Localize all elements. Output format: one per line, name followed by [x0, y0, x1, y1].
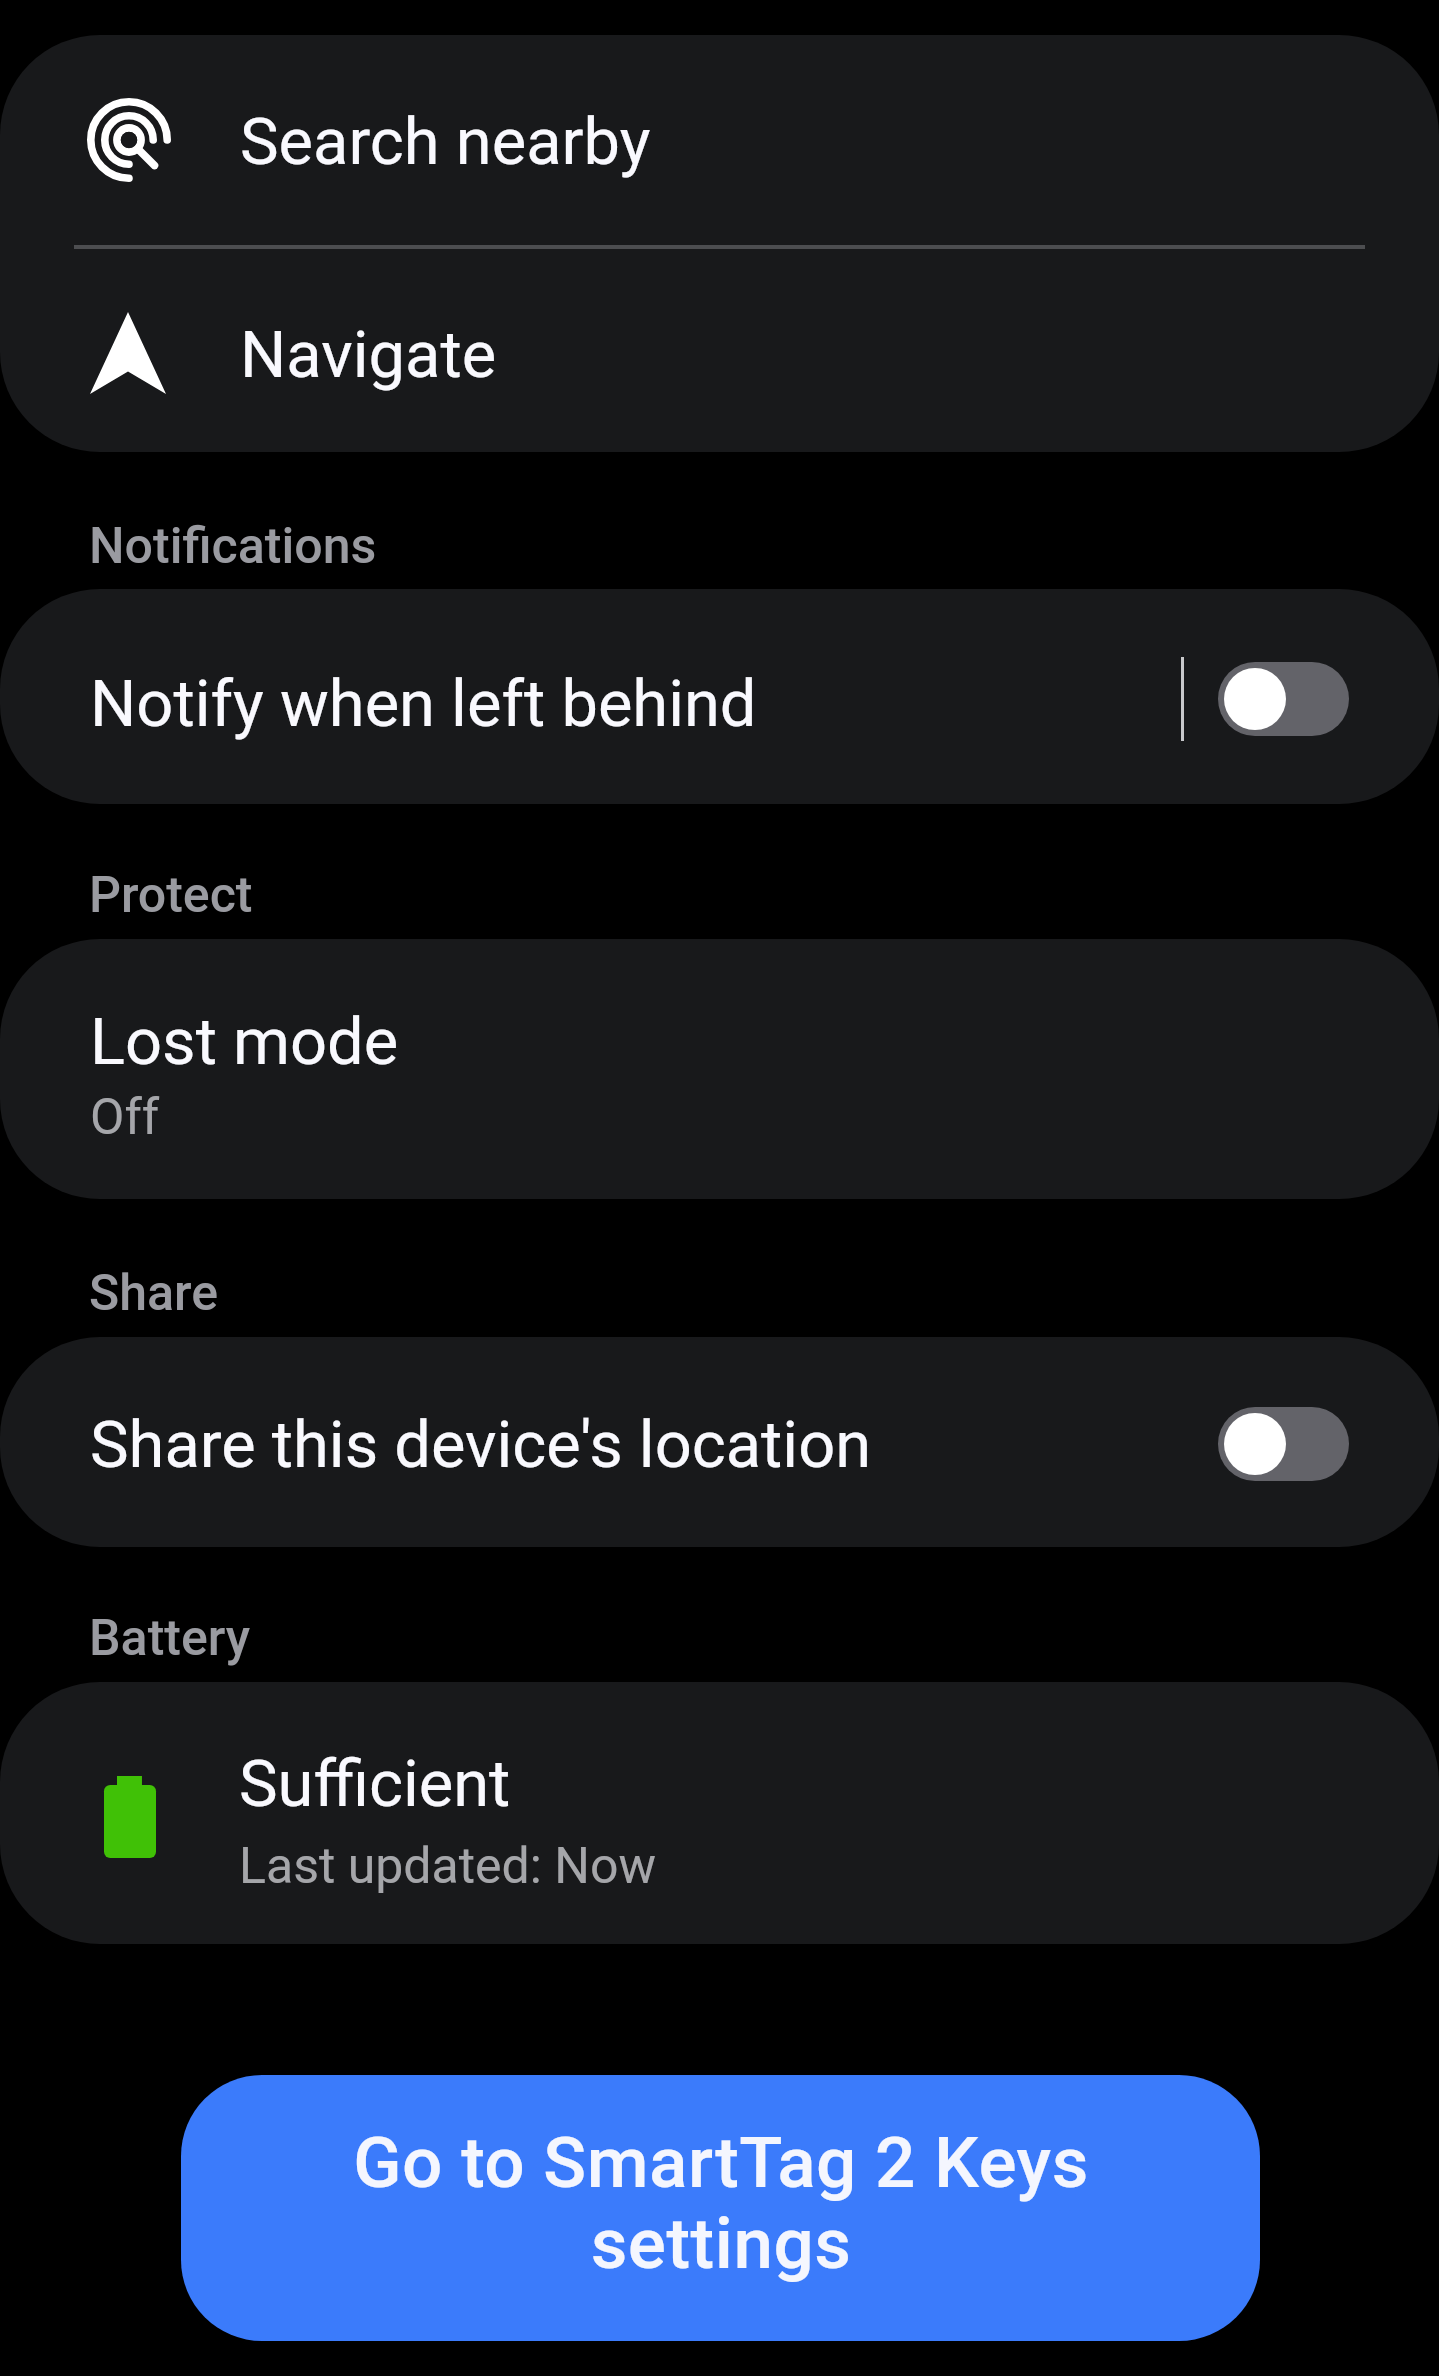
staticText: Search nearby: [240, 104, 651, 180]
button[interactable]: Battery level: [0, 1682, 1439, 1944]
staticText: Battery: [89, 1609, 251, 1668]
other: Battery level: [104, 1776, 156, 1858]
staticText: Protect: [89, 866, 253, 925]
staticText: Off: [90, 1088, 160, 1147]
button[interactable]: Share this device's location: [1218, 1407, 1349, 1481]
staticText: Go to SmartTag 2 Keys settings: [321, 2121, 1121, 2285]
button[interactable]: Navigate: [0, 250, 1439, 452]
button[interactable]: Lost mode: [0, 939, 1439, 1199]
staticText: Sufficient: [239, 1746, 511, 1822]
button[interactable]: Go to SmartTag 2 Keys settings: [181, 2075, 1260, 2341]
button[interactable]: Notify when left behind: [0, 589, 1439, 804]
staticText: Lost mode: [90, 1004, 399, 1080]
button[interactable]: Search nearby: [0, 35, 1439, 247]
staticText: Last updated: Now: [239, 1837, 657, 1896]
staticText: Navigate: [240, 317, 497, 393]
staticText: Share this device's location: [90, 1407, 872, 1483]
other: Search nearby: [87, 98, 171, 182]
staticText: Notifications: [89, 517, 377, 576]
other: Navigate: [90, 312, 166, 394]
button[interactable]: Notify when left behind: [1218, 662, 1349, 736]
staticText: Notify when left behind: [90, 666, 757, 742]
button[interactable]: Share this device's location: [0, 1337, 1439, 1547]
staticText: Share: [89, 1264, 218, 1323]
